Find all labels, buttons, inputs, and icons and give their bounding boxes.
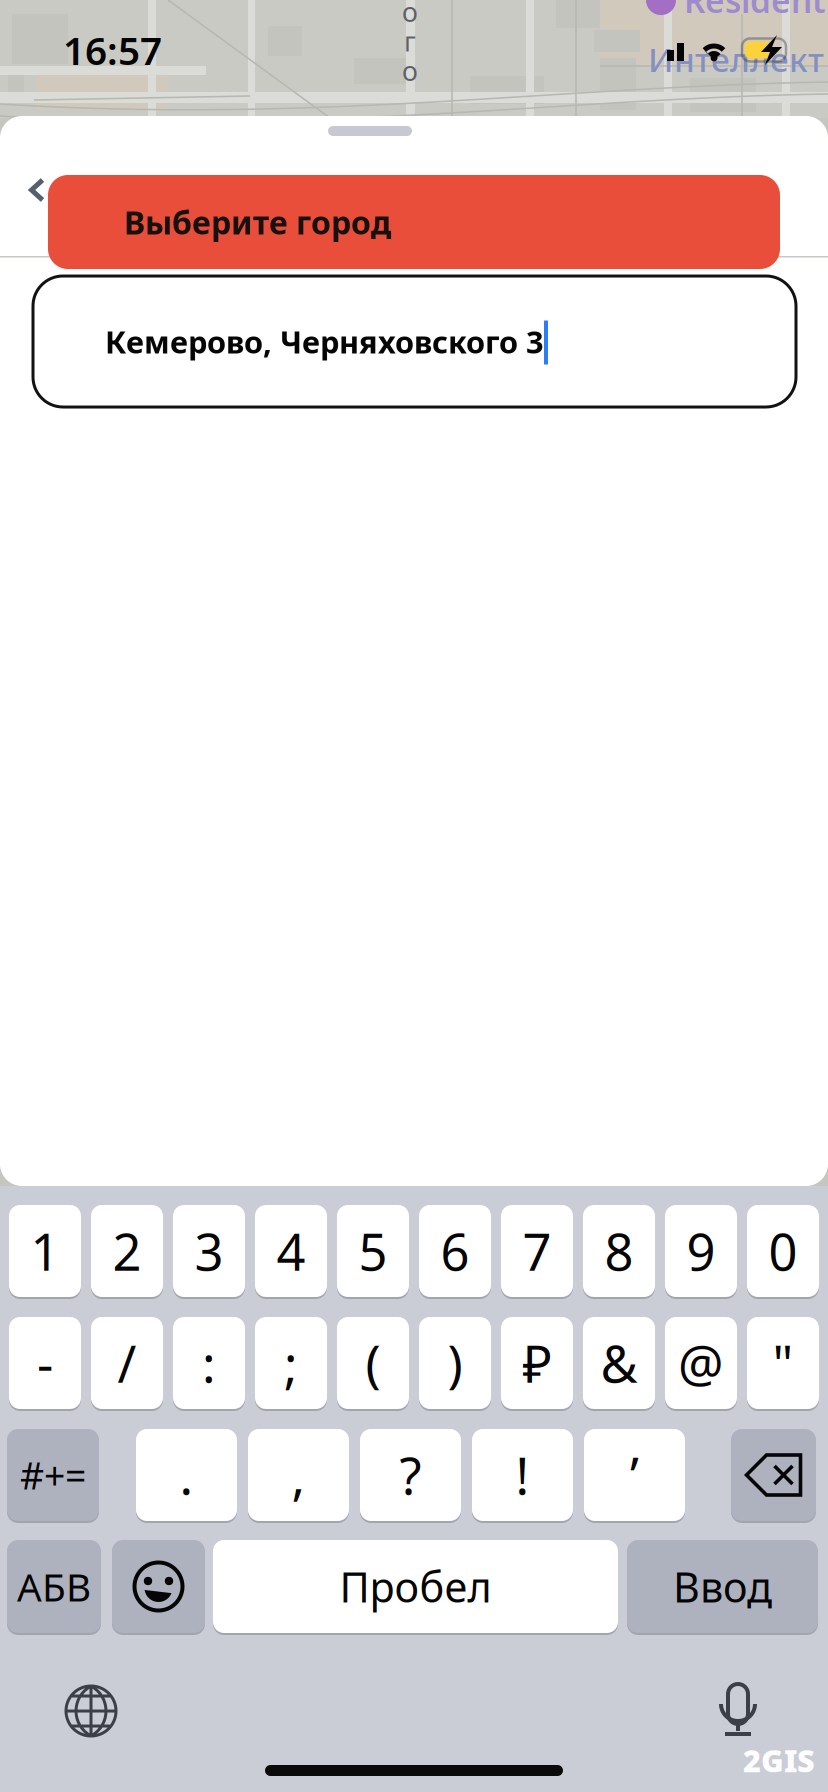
staticText: 6 bbox=[440, 1217, 469, 1285]
staticText: ’ bbox=[630, 1441, 639, 1509]
button[interactable]: АБВ bbox=[7, 1538, 101, 1635]
button[interactable]: Кемерово, Черняховского 3 bbox=[33, 276, 796, 407]
button[interactable]: ? bbox=[360, 1427, 461, 1523]
staticText: 1 bbox=[30, 1217, 59, 1285]
button[interactable]: 6 bbox=[419, 1203, 491, 1299]
button[interactable]: 4 bbox=[255, 1203, 327, 1299]
staticText: 5 bbox=[358, 1217, 387, 1285]
button[interactable]: Выберите город bbox=[48, 175, 780, 269]
button[interactable]: - bbox=[9, 1315, 81, 1411]
staticText: ? bbox=[399, 1441, 421, 1509]
staticText: 16:57 bbox=[63, 24, 162, 76]
button[interactable]: , bbox=[248, 1427, 349, 1523]
staticText: Интеллект право bbox=[648, 37, 828, 81]
staticText: ) bbox=[447, 1329, 462, 1397]
staticText: Кемерово, Черняховского 3 bbox=[105, 321, 544, 362]
staticText: г bbox=[404, 23, 416, 59]
staticText: #+= bbox=[20, 1450, 86, 1500]
button[interactable]: & bbox=[583, 1315, 655, 1411]
staticText: о bbox=[402, 0, 418, 29]
button[interactable]: ( bbox=[337, 1315, 409, 1411]
staticText: @ bbox=[678, 1329, 724, 1397]
staticText: Resident bbox=[684, 0, 826, 22]
staticText: 2GIS bbox=[743, 1740, 815, 1781]
button[interactable]: 5 bbox=[337, 1203, 409, 1299]
staticText: & bbox=[600, 1329, 637, 1397]
button[interactable]: @ bbox=[665, 1315, 737, 1411]
button[interactable]: 7 bbox=[501, 1203, 573, 1299]
button[interactable]: Delete bbox=[731, 1427, 816, 1523]
button[interactable]: Dictation bbox=[673, 1682, 803, 1740]
button[interactable]: ! bbox=[472, 1427, 573, 1523]
button[interactable]: #+= bbox=[7, 1427, 99, 1523]
staticText: Пробел bbox=[339, 1559, 491, 1614]
staticText: - bbox=[37, 1329, 53, 1397]
button[interactable]: 8 bbox=[583, 1203, 655, 1299]
staticText: Ввод bbox=[673, 1559, 772, 1614]
button[interactable]: ) bbox=[419, 1315, 491, 1411]
staticText: 0 bbox=[768, 1217, 797, 1285]
staticText: ₽ bbox=[522, 1329, 551, 1397]
staticText: : bbox=[202, 1329, 216, 1397]
button[interactable]: . bbox=[136, 1427, 237, 1523]
staticText: АБВ bbox=[17, 1561, 91, 1612]
button[interactable]: / bbox=[91, 1315, 163, 1411]
staticText: Выберите город bbox=[124, 201, 391, 243]
staticText: о bbox=[402, 53, 418, 88]
staticText: 9 bbox=[686, 1217, 715, 1285]
button[interactable]: 1 bbox=[9, 1203, 81, 1299]
button[interactable]: 3 bbox=[173, 1203, 245, 1299]
button[interactable]: Ввод bbox=[627, 1538, 818, 1635]
button[interactable]: 9 bbox=[665, 1203, 737, 1299]
button[interactable]: Пробел bbox=[213, 1538, 618, 1635]
staticText: 8 bbox=[604, 1217, 633, 1285]
staticText: 7 bbox=[522, 1217, 551, 1285]
staticText: , bbox=[291, 1441, 305, 1509]
staticText: / bbox=[117, 1329, 136, 1397]
button[interactable]: Next keyboard bbox=[26, 1682, 156, 1740]
staticText: . bbox=[179, 1441, 193, 1509]
button[interactable]: 2 bbox=[91, 1203, 163, 1299]
button[interactable]: : bbox=[173, 1315, 245, 1411]
button[interactable]: ; bbox=[255, 1315, 327, 1411]
staticText: ! bbox=[515, 1441, 529, 1509]
staticText: ; bbox=[284, 1329, 298, 1397]
button[interactable]: Emoji bbox=[112, 1538, 205, 1635]
button[interactable]: 0 bbox=[747, 1203, 819, 1299]
staticText: 3 bbox=[194, 1217, 223, 1285]
button[interactable]: Back bbox=[5, 158, 69, 222]
button[interactable]: ₽ bbox=[501, 1315, 573, 1411]
staticText: " bbox=[772, 1329, 793, 1397]
staticText: ( bbox=[365, 1329, 380, 1397]
staticText: 2 bbox=[112, 1217, 141, 1285]
button[interactable]: ’ bbox=[584, 1427, 685, 1523]
staticText: 4 bbox=[276, 1217, 305, 1285]
button[interactable]: " bbox=[747, 1315, 819, 1411]
